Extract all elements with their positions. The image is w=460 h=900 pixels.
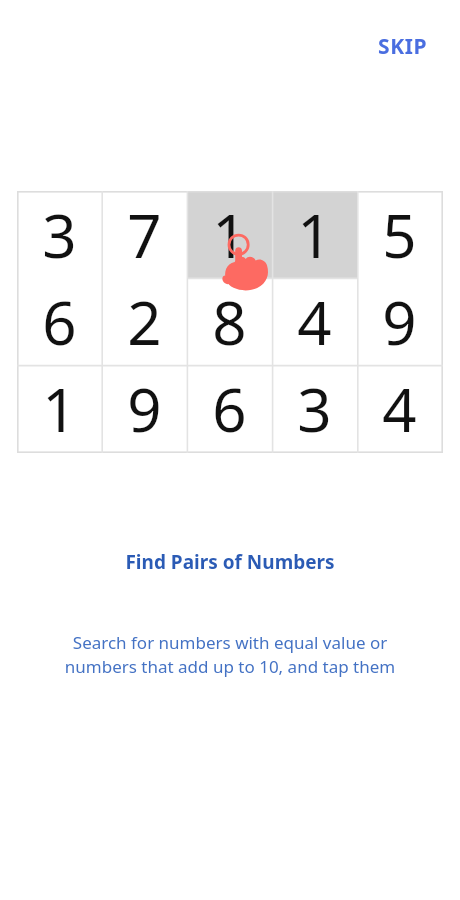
button[interactable]: 4 xyxy=(357,365,442,452)
staticText: 9 xyxy=(127,368,162,450)
staticText: SKIP xyxy=(378,32,428,61)
button[interactable]: 3 xyxy=(272,365,357,452)
staticText: 3 xyxy=(297,368,332,450)
other: Tap here xyxy=(220,231,282,293)
button[interactable]: 7 xyxy=(102,191,187,278)
staticText: 8 xyxy=(212,281,247,363)
button[interactable]: 5 xyxy=(357,191,442,278)
button[interactable]: 6 xyxy=(187,365,272,452)
button[interactable]: 2 xyxy=(102,278,187,365)
staticText: 6 xyxy=(42,281,77,363)
staticText: 6 xyxy=(212,368,247,450)
button[interactable]: 4 xyxy=(272,278,357,365)
staticText: 3 xyxy=(42,194,77,276)
staticText: 2 xyxy=(127,281,162,363)
staticText: 9 xyxy=(382,281,417,363)
staticText: 5 xyxy=(382,194,417,276)
staticText: 1 xyxy=(297,194,332,276)
staticText: 7 xyxy=(127,194,162,276)
button[interactable]: 1 xyxy=(272,191,357,278)
staticText: 4 xyxy=(382,368,417,450)
staticText: Search for numbers with equal value or n… xyxy=(30,631,430,678)
button[interactable]: 9 xyxy=(357,278,442,365)
staticText: Find Pairs of Numbers xyxy=(125,549,335,575)
staticText: 4 xyxy=(297,281,332,363)
staticText: 1 xyxy=(42,368,77,450)
staticText: 1 xyxy=(212,194,247,276)
button[interactable]: SKIP xyxy=(372,28,434,65)
button[interactable]: 3 xyxy=(17,191,102,278)
button[interactable]: 6 xyxy=(17,278,102,365)
button[interactable]: 8 xyxy=(187,278,272,365)
button[interactable]: 1 xyxy=(187,191,272,278)
button[interactable]: 1 xyxy=(17,365,102,452)
button[interactable]: 9 xyxy=(102,365,187,452)
